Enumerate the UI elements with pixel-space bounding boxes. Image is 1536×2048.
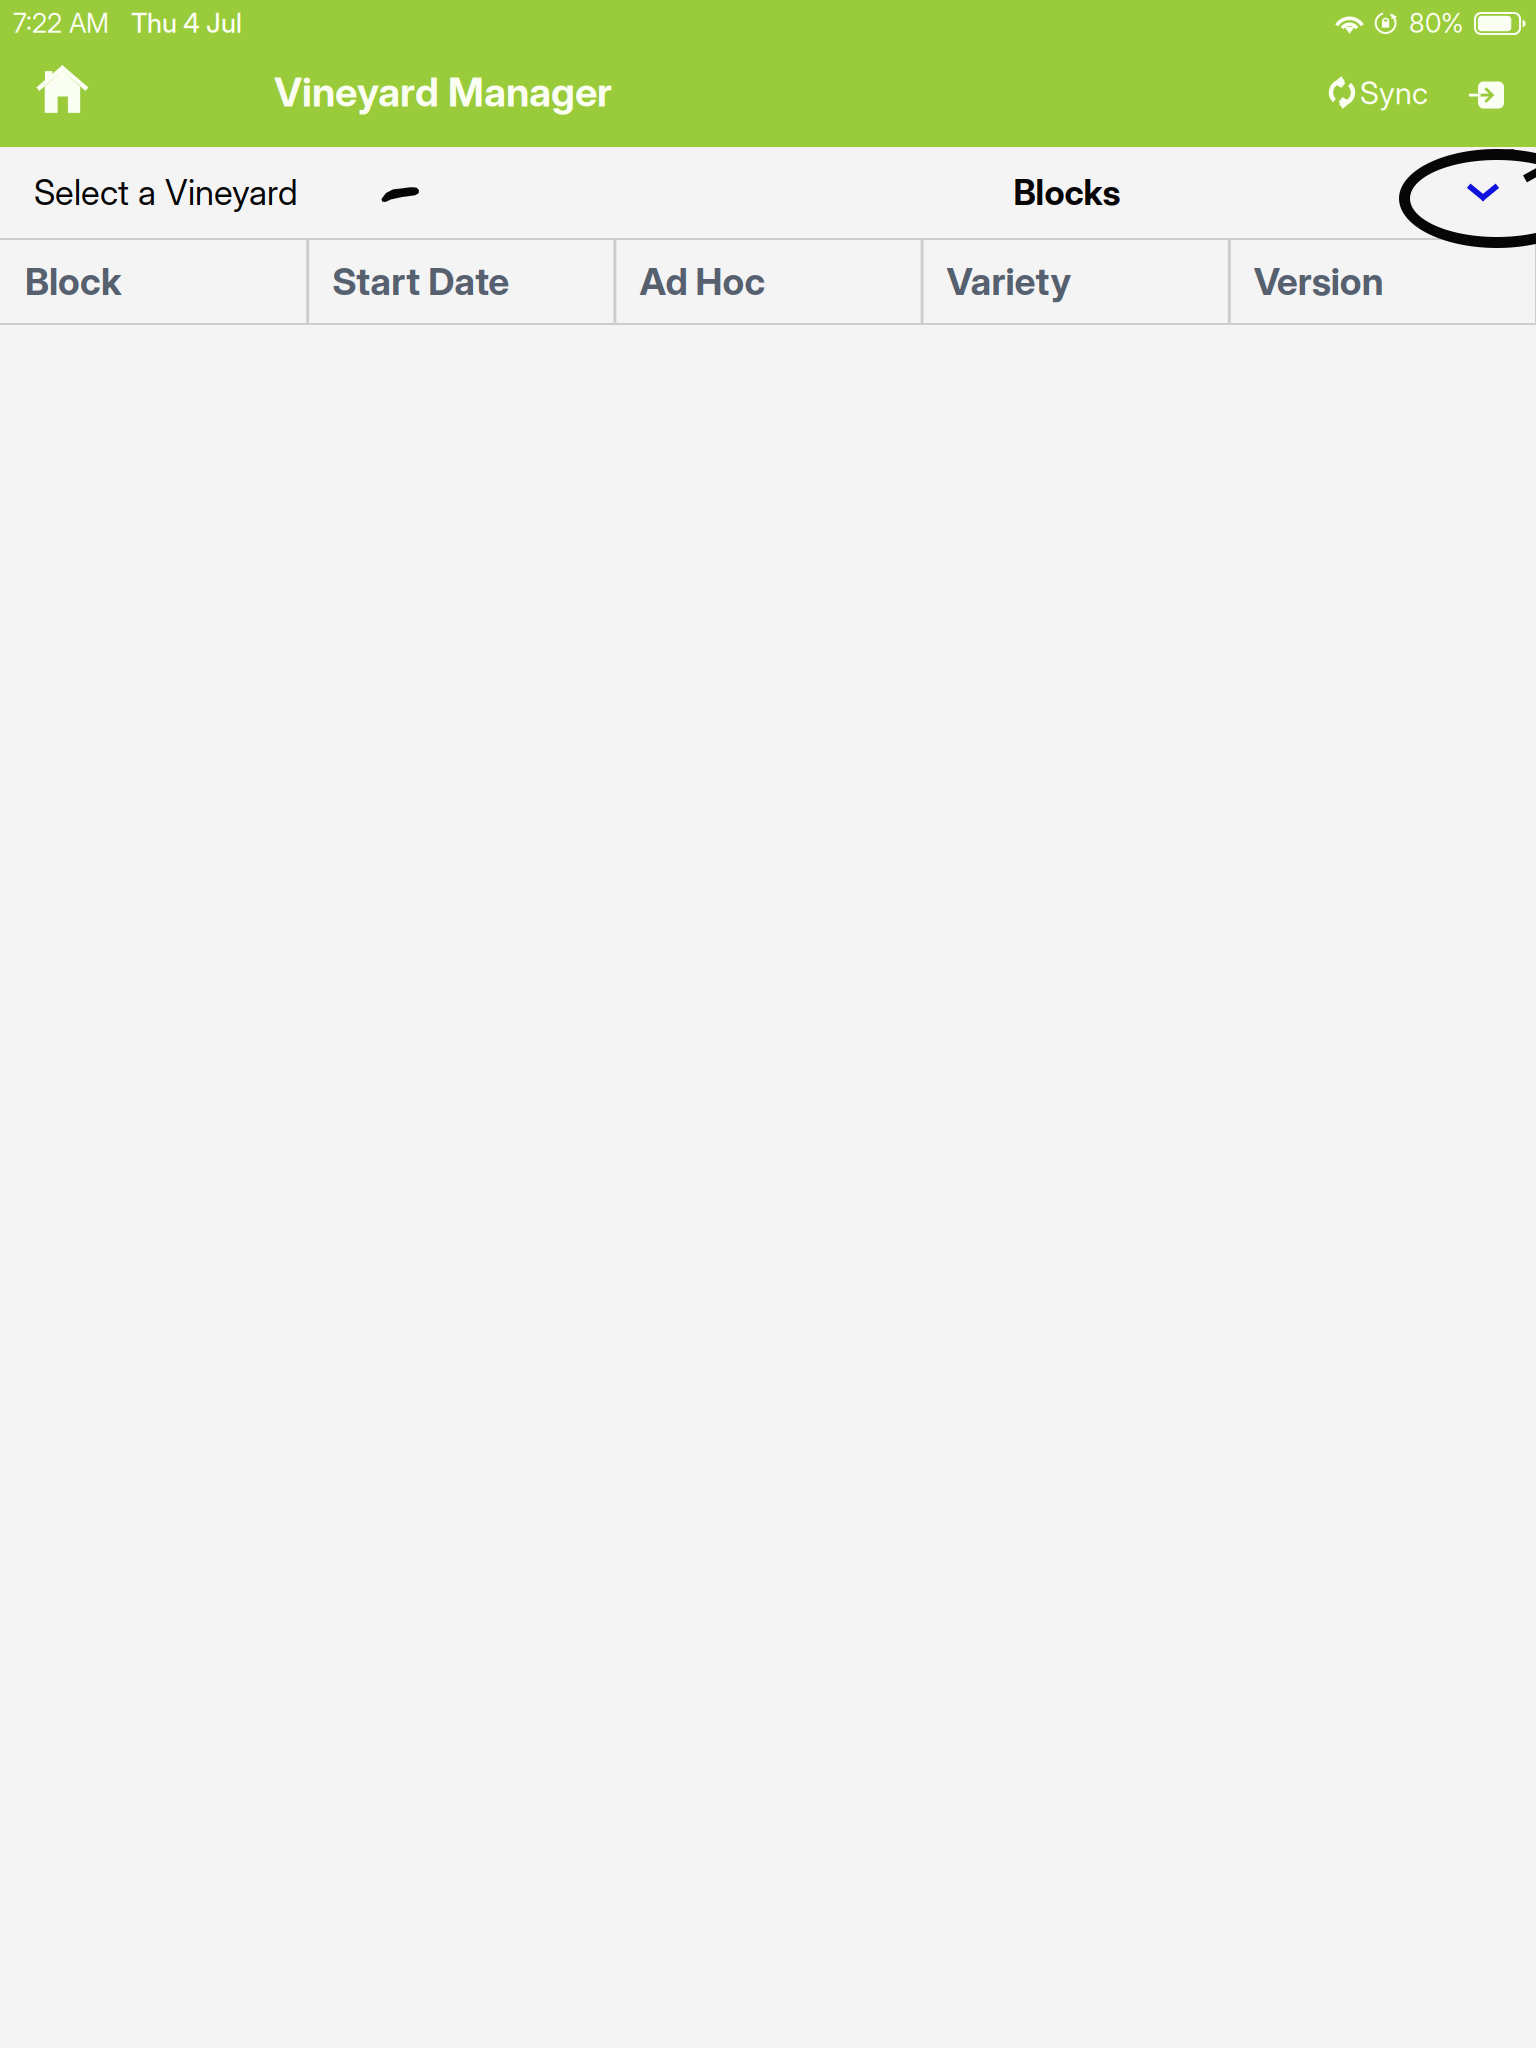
staticText: Select a Vineyard [34,171,298,213]
staticText: Sync [1360,74,1428,111]
staticText: Vineyard Manager [274,68,612,116]
staticText: Block [25,259,122,304]
button[interactable]: Ad Hoc [614,238,922,325]
staticText: Thu 4 Jul [131,7,242,39]
button[interactable]: Block [0,238,307,325]
button[interactable]: Log out [1456,66,1518,124]
staticText: 7:22 AM [13,7,109,39]
button[interactable]: Version [1229,238,1536,325]
button[interactable]: Start Date [307,238,614,325]
staticText: 80% [1409,7,1464,39]
staticText: Variety [947,259,1072,304]
button[interactable]: Variety [922,238,1229,325]
button[interactable]: Select a Vineyard [34,147,334,238]
staticText: Ad Hoc [639,259,765,304]
button[interactable]: Home [20,47,108,135]
button[interactable]: Sync [1329,64,1439,122]
staticText: Version [1254,259,1384,304]
staticText: Blocks [1013,171,1120,213]
staticText: Start Date [332,259,509,304]
button[interactable]: Expand [1441,147,1525,238]
